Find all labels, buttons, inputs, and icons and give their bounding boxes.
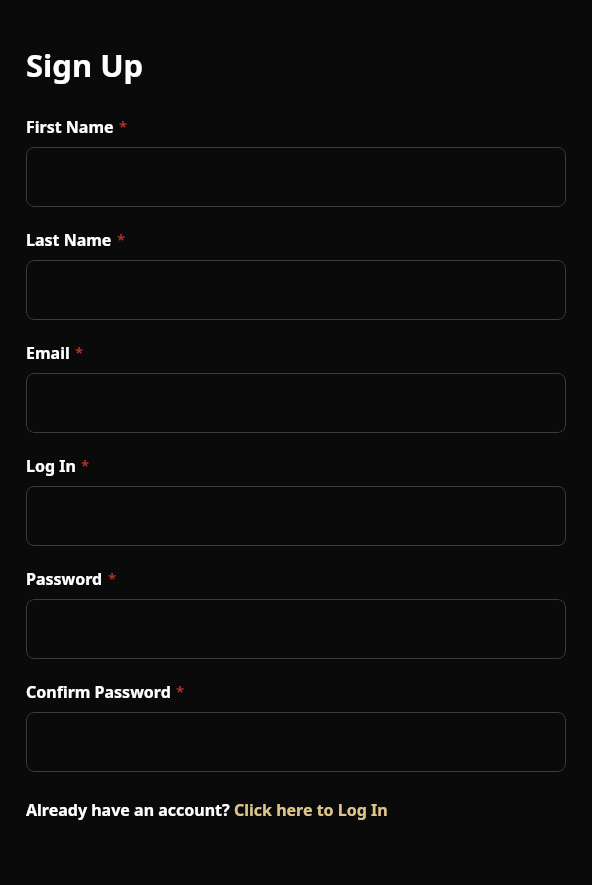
staticText: First Name xyxy=(26,116,114,138)
staticText: Email xyxy=(26,342,70,364)
staticText: Confirm Password xyxy=(26,681,171,703)
button[interactable] xyxy=(26,712,566,772)
button[interactable]: Click here to Log In xyxy=(234,799,388,821)
staticText: * xyxy=(119,116,128,136)
staticText: Already have an account? xyxy=(26,799,234,821)
staticText: * xyxy=(108,568,117,588)
staticText: * xyxy=(176,681,185,701)
staticText: * xyxy=(117,229,126,249)
button[interactable] xyxy=(26,373,566,433)
staticText: Log In xyxy=(26,455,76,477)
staticText: Click here to Log In xyxy=(234,799,388,821)
button[interactable] xyxy=(26,260,566,320)
staticText: Sign Up xyxy=(26,44,144,86)
staticText: Password xyxy=(26,568,103,590)
button[interactable] xyxy=(26,147,566,207)
button[interactable] xyxy=(26,486,566,546)
button[interactable] xyxy=(26,599,566,659)
staticText: Last Name xyxy=(26,229,112,251)
staticText: * xyxy=(81,455,90,475)
staticText: * xyxy=(75,342,84,362)
